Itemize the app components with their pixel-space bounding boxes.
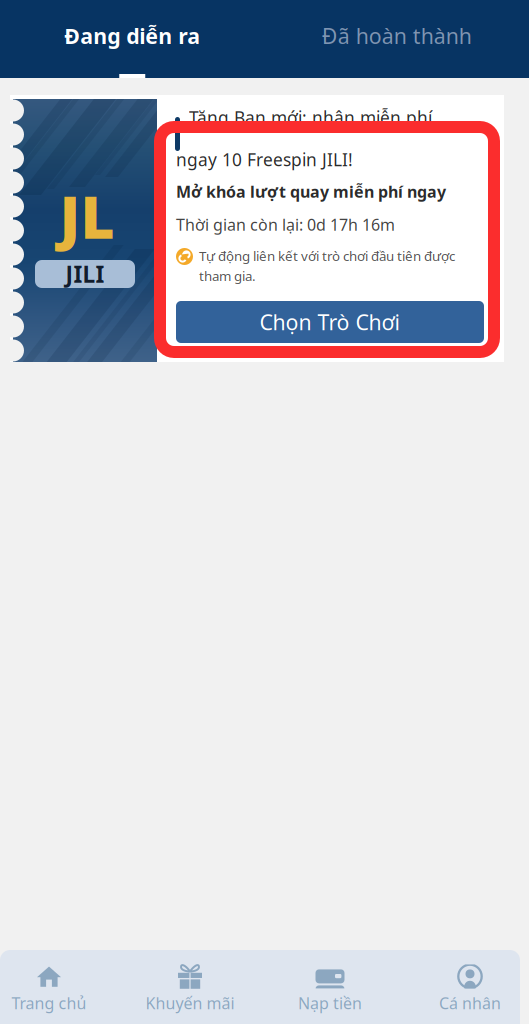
staticText: JILI [65,259,104,289]
button[interactable]: Đã hoàn thành [264,0,529,78]
button[interactable]: Cá nhân [409,958,529,1020]
staticText: Thời gian còn lại: 0d 17h 16m [176,214,395,235]
staticText: Cá nhân [439,992,501,1014]
staticText: Đang diễn ra [64,22,200,50]
button[interactable]: Trang chủ [0,958,110,1020]
staticText: Đã hoàn thành [322,22,472,50]
staticText: JL [59,177,114,255]
button[interactable]: Khuyến mãi [129,958,251,1020]
staticText: Khuyến mãi [145,992,234,1014]
staticText: Tự động liên kết với trò chơi đầu tiên đ… [199,247,455,265]
button[interactable]: Chọn Trò Chơi [176,301,484,343]
staticText: Tặng Bạn mới: nhận miễn phí [189,106,432,129]
staticText: Mở khóa lượt quay miễn phí ngay [176,181,446,202]
staticText: Trang chủ [11,992,86,1014]
button[interactable]: Đang diễn ra [0,0,264,78]
staticText: tham gia. [199,267,256,285]
button[interactable]: Nạp tiền [269,958,391,1020]
staticText: Nạp tiền [298,992,362,1014]
staticText: ngay 10 Freespin JILI! [176,148,353,171]
staticText: Chọn Trò Chơi [259,308,400,336]
